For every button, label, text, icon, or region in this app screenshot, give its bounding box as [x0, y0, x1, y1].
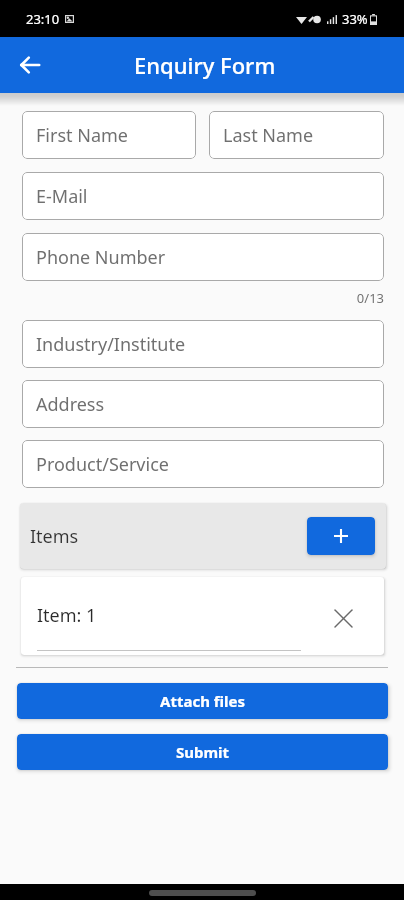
button[interactable]: E-Mail	[22, 172, 384, 220]
button[interactable]: Phone Number	[22, 233, 384, 281]
staticText: Attach files	[160, 691, 246, 711]
button[interactable]: Product/Service	[22, 440, 384, 488]
staticText: Phone Number	[36, 245, 166, 270]
staticText: Items	[30, 524, 79, 549]
staticText: E-Mail	[36, 184, 88, 209]
button[interactable]: Attach files	[17, 683, 388, 719]
staticText: Address	[36, 392, 105, 417]
button[interactable]: Last Name	[209, 111, 384, 159]
button[interactable]: Address	[22, 380, 384, 428]
button[interactable]: Submit	[17, 734, 388, 770]
staticText: Enquiry Form	[134, 50, 276, 80]
button[interactable]: Item: 1	[21, 577, 384, 655]
button[interactable]: Industry/Institute	[22, 320, 384, 368]
staticText: 0/13	[22, 289, 384, 307]
staticText: 33%	[342, 10, 368, 28]
staticText: Industry/Institute	[36, 332, 186, 357]
button[interactable]: First Name	[22, 111, 196, 159]
staticText: Item: 1	[37, 603, 97, 628]
staticText: First Name	[36, 123, 128, 148]
staticText: Submit	[176, 742, 230, 762]
button[interactable]: Remove item	[330, 605, 356, 631]
button[interactable]: Add item	[307, 517, 375, 555]
staticText: Last Name	[223, 123, 314, 148]
staticText: Product/Service	[36, 452, 169, 477]
staticText: 23:10	[26, 10, 60, 28]
button[interactable]: Back	[12, 47, 48, 83]
